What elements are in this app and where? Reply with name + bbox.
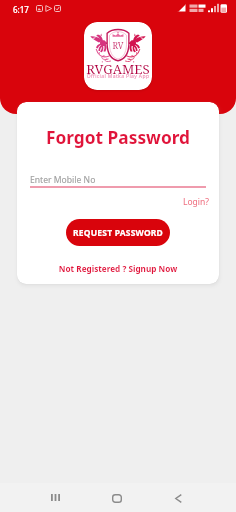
button[interactable]: Recents bbox=[36, 483, 236, 512]
staticText: 6:17 bbox=[13, 4, 29, 15]
button[interactable]: Back bbox=[160, 483, 236, 512]
staticText: Enter Mobile No bbox=[30, 174, 96, 186]
staticText: RV bbox=[84, 40, 152, 52]
button[interactable]: Login? bbox=[183, 196, 209, 208]
button[interactable]: Not Registered ? Signup Now bbox=[17, 263, 219, 274]
staticText: RVGAMES bbox=[84, 60, 152, 78]
staticText: REQUEST PASSWORD bbox=[73, 227, 164, 239]
staticText: Forgot Password bbox=[17, 126, 219, 150]
button[interactable]: Home bbox=[98, 483, 236, 512]
button[interactable]: REQUEST PASSWORD bbox=[66, 219, 170, 246]
staticText: Official Matka Play App bbox=[84, 73, 152, 80]
